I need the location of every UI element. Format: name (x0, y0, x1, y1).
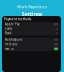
staticText: Cards (5, 27, 12, 30)
staticText: Receipts (5, 42, 17, 46)
staticText: Payment methods (4, 17, 31, 21)
staticText: Notifications (5, 38, 22, 41)
button[interactable]: Apple Pay (3, 22, 59, 26)
staticText: Bank (5, 31, 11, 35)
staticText: Settings (21, 10, 42, 17)
button[interactable]: Cards (3, 26, 59, 31)
button[interactable]: Face ID (3, 46, 59, 51)
staticText: 2 (56, 31, 58, 35)
button[interactable]: Bank (3, 31, 59, 35)
staticText: Work Payments (17, 4, 47, 9)
button[interactable]: Notifications (3, 37, 59, 42)
button[interactable]: Receipts (3, 42, 59, 46)
staticText: Face ID (5, 47, 14, 50)
staticText: 3 (56, 27, 58, 30)
staticText: Apple Pay (5, 22, 19, 26)
staticText: On (54, 22, 58, 26)
